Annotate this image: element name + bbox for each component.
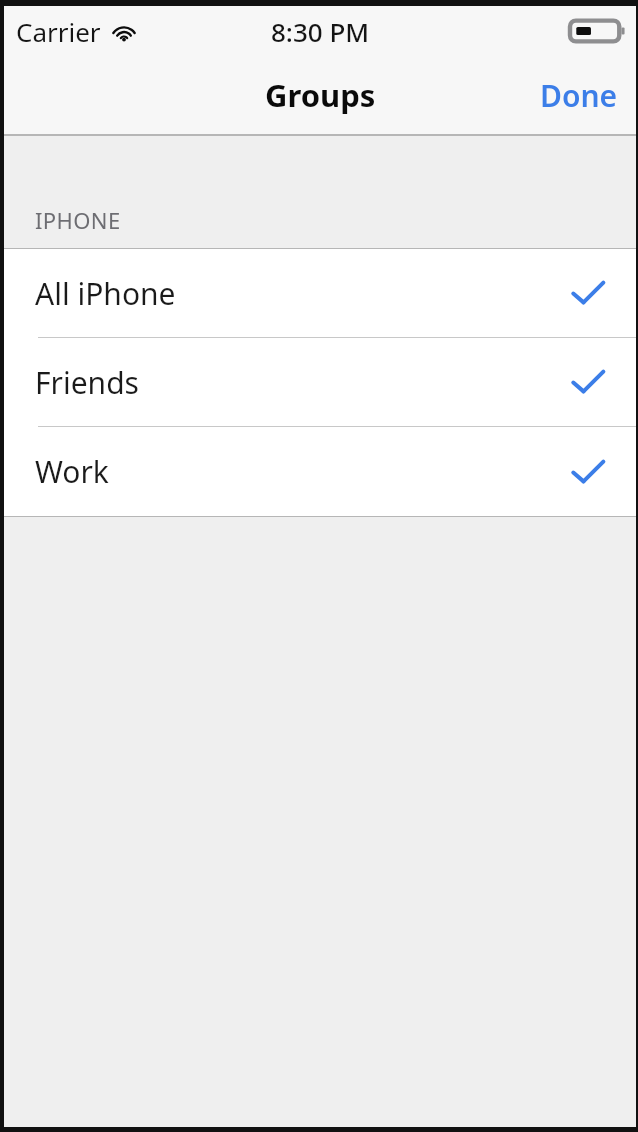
other: Selected	[572, 369, 604, 395]
button[interactable]: Work	[4, 427, 636, 516]
staticText: Friends	[35, 362, 139, 403]
staticText: Work	[35, 451, 109, 492]
button[interactable]: All iPhone	[4, 249, 636, 338]
staticText: Groups	[265, 74, 376, 116]
staticText: All iPhone	[35, 273, 176, 314]
button[interactable]: Done	[522, 61, 636, 130]
staticText: 8:30 PM	[271, 14, 370, 49]
staticText: IPHONE	[35, 205, 121, 235]
button[interactable]: Friends	[4, 338, 636, 427]
other: Selected	[572, 459, 604, 485]
staticText: Done	[540, 75, 618, 116]
other: Selected	[572, 280, 604, 306]
staticText: Carrier	[16, 14, 101, 49]
